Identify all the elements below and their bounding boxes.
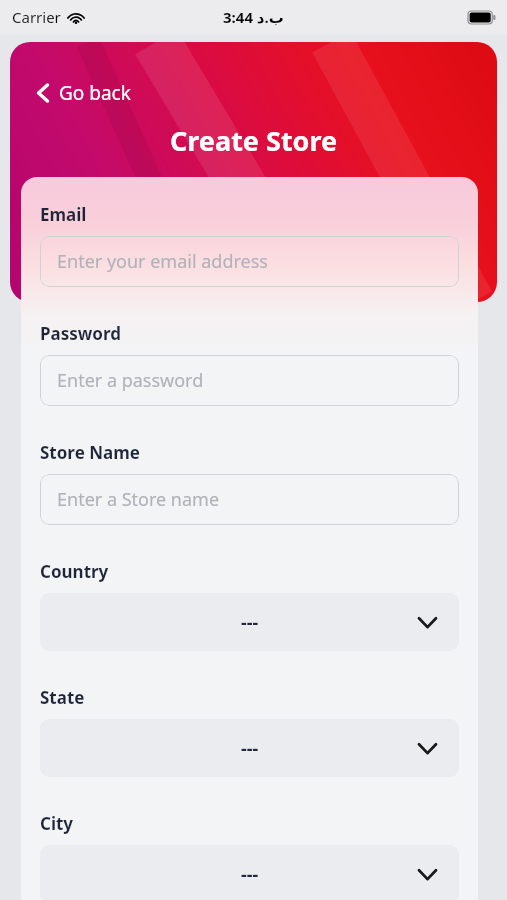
- staticText: Email: [40, 203, 87, 226]
- staticText: Enter a password: [57, 368, 204, 393]
- button[interactable]: Enter a password: [40, 355, 459, 406]
- staticText: Country: [40, 560, 109, 583]
- staticText: State: [40, 686, 85, 709]
- button[interactable]: State selector: [40, 719, 459, 777]
- staticText: Create Store: [170, 122, 338, 159]
- button[interactable]: Enter a Store name: [40, 474, 459, 525]
- staticText: Password: [40, 322, 121, 345]
- staticText: ---: [241, 862, 259, 887]
- button[interactable]: City selector: [40, 845, 459, 900]
- button[interactable]: Go back: [28, 74, 139, 112]
- staticText: ---: [241, 610, 259, 635]
- staticText: Enter your email address: [57, 249, 268, 274]
- staticText: ---: [241, 736, 259, 761]
- button[interactable]: Country selector: [40, 593, 459, 651]
- staticText: Store Name: [40, 441, 140, 464]
- staticText: Carrier: [12, 7, 61, 27]
- staticText: City: [40, 812, 74, 835]
- staticText: 3:44 ب.د: [223, 7, 284, 27]
- staticText: Go back: [59, 80, 131, 106]
- button[interactable]: Enter your email address: [40, 236, 459, 287]
- staticText: Enter a Store name: [57, 487, 220, 512]
